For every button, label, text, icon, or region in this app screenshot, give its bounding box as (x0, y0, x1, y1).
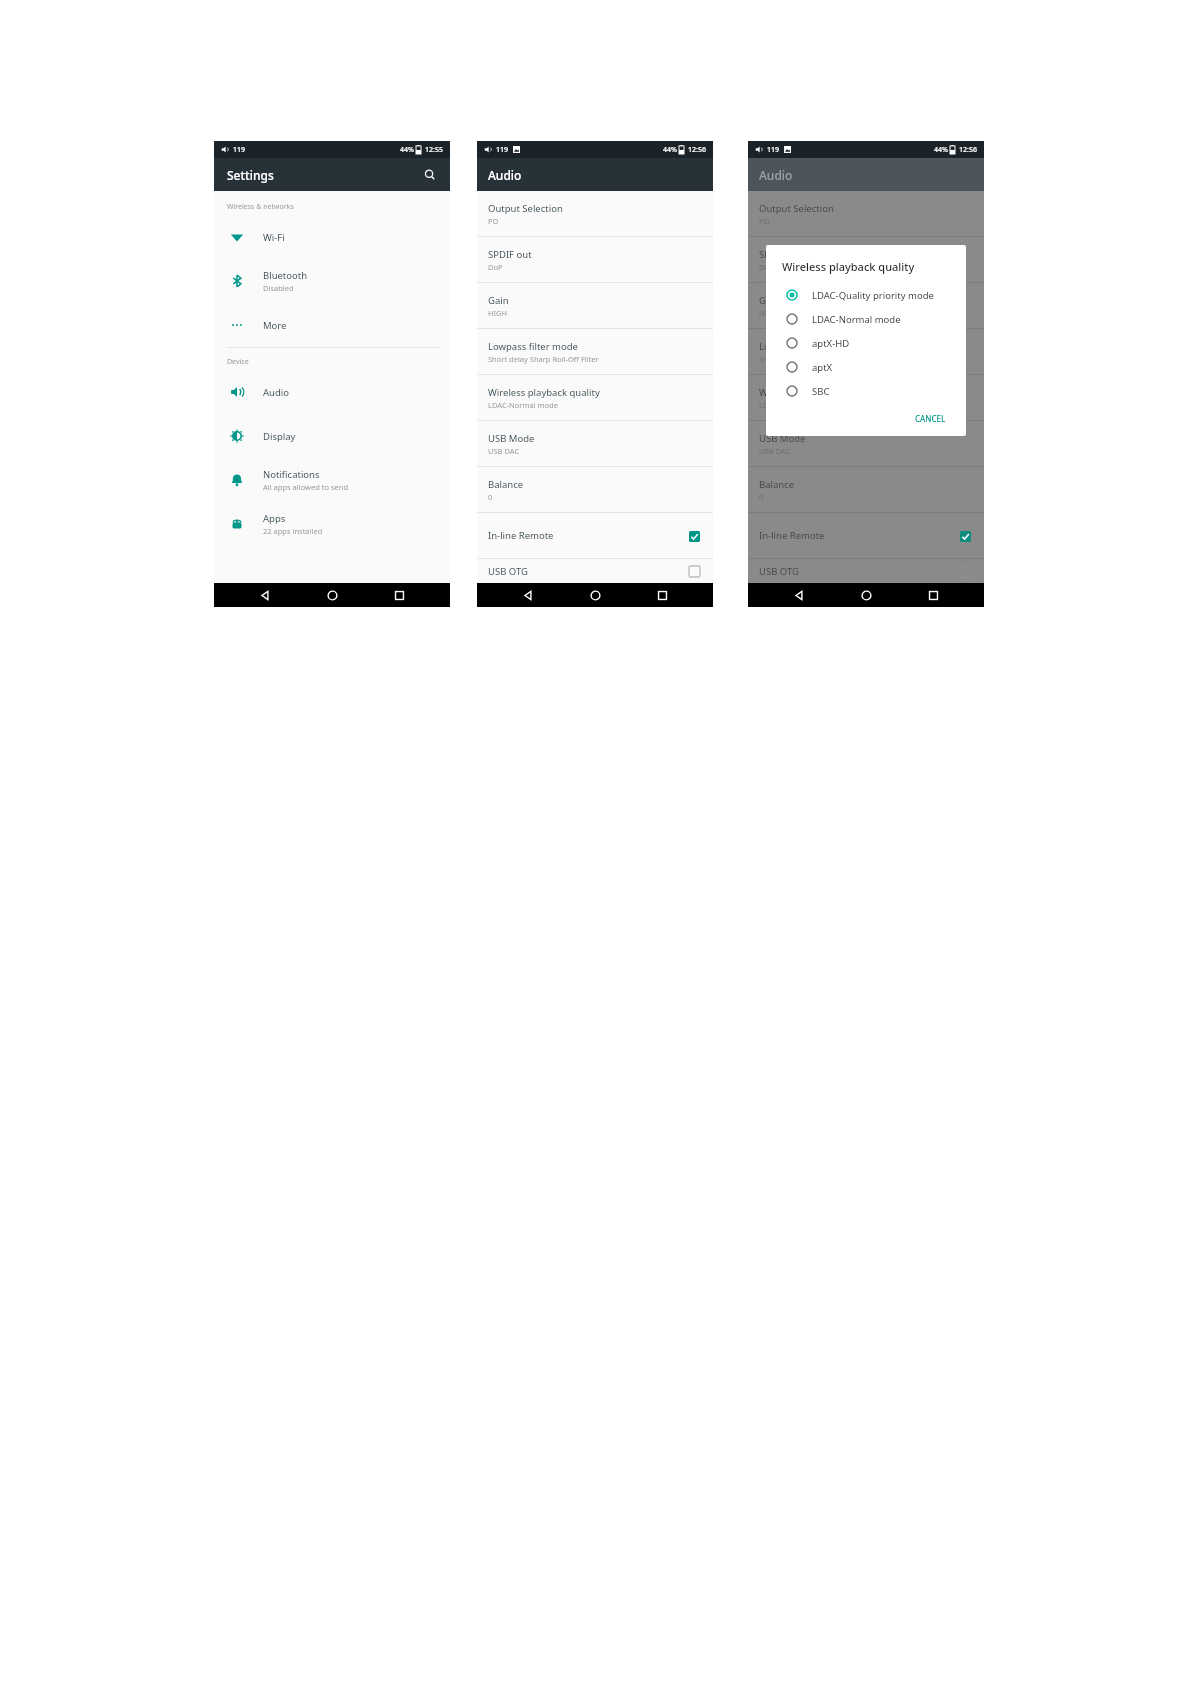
staticText: USB OTG (759, 565, 799, 578)
staticText: HIGH (488, 308, 508, 318)
button[interactable]: Notifications (214, 458, 450, 502)
button[interactable]: Home (316, 583, 348, 607)
staticText: 44% (934, 145, 948, 155)
staticText: Wireless & networks (227, 202, 294, 212)
staticText: All apps allowed to send (263, 482, 349, 492)
staticText: 119 (233, 145, 246, 155)
button[interactable]: USB Mode (477, 421, 713, 466)
staticText: Audio (488, 167, 522, 183)
button[interactable]: SPDIF out (477, 237, 713, 282)
button[interactable]: Back (512, 583, 544, 607)
button[interactable]: Back (249, 583, 281, 607)
staticText: Device (227, 357, 249, 367)
button[interactable]: aptX (782, 355, 952, 379)
staticText: LDAC-Normal mode (488, 400, 558, 410)
button[interactable]: Home (850, 583, 882, 607)
staticText: 44% (400, 145, 414, 155)
button[interactable]: Display (214, 414, 450, 458)
staticText: Balance (488, 478, 524, 491)
staticText: Output Selection (759, 202, 834, 215)
button[interactable]: Search (419, 164, 441, 186)
button[interactable]: Recents (646, 583, 678, 607)
button[interactable]: USB OTG (477, 559, 713, 583)
staticText: PO (759, 216, 770, 226)
button[interactable]: In-line Remote (477, 513, 713, 558)
button[interactable]: Wireless playback quality (477, 375, 713, 420)
staticText: Output Selection (488, 202, 563, 215)
button[interactable]: Output Selection (477, 191, 713, 236)
staticText: DoP (759, 262, 774, 272)
button[interactable]: LDAC-Normal mode (782, 307, 952, 331)
staticText: USB DAC (759, 446, 791, 456)
staticText: LDAC-Normal mode (759, 400, 829, 410)
button[interactable]: Lowpass filter mode (477, 329, 713, 374)
staticText: LDAC-Quality priority mode (812, 289, 934, 302)
button[interactable]: Recents (383, 583, 415, 607)
staticText: Audio (759, 167, 793, 183)
button[interactable]: Audio (214, 370, 450, 414)
staticText: HIGH (759, 308, 779, 318)
staticText: 12:56 (959, 145, 977, 155)
staticText: USB Mode (488, 432, 535, 445)
button[interactable]: SBC (782, 379, 952, 403)
staticText: Wi-Fi (263, 231, 285, 244)
staticText: 12:55 (425, 145, 443, 155)
staticText: CANCEL (915, 413, 946, 424)
button[interactable]: CANCEL (909, 409, 952, 428)
staticText: DoP (488, 262, 503, 272)
staticText: PO (488, 216, 499, 226)
staticText: USB OTG (488, 565, 528, 578)
button[interactable]: Bluetooth (214, 259, 450, 303)
staticText: Short delay Sharp Roll-Off Filter (759, 354, 870, 364)
staticText: Balance (759, 478, 795, 491)
staticText: Apps (263, 512, 286, 525)
button[interactable]: Output Selection (748, 191, 984, 236)
staticText: 119 (767, 145, 780, 155)
staticText: Short delay Sharp Roll-Off Filter (488, 354, 599, 364)
button[interactable]: Lowpass filter mode (748, 329, 984, 374)
button[interactable]: LDAC-Quality priority mode (782, 283, 952, 307)
staticText: In-line Remote (759, 529, 825, 542)
staticText: SBC (812, 385, 830, 398)
button[interactable]: Recents (917, 583, 949, 607)
staticText: Gain (759, 294, 780, 307)
staticText: Wireless playback quality (759, 386, 871, 399)
staticText: USB DAC (488, 446, 520, 456)
staticText: Settings (227, 167, 274, 183)
button[interactable]: Apps (214, 502, 450, 546)
button[interactable]: Gain (748, 283, 984, 328)
staticText: In-line Remote (488, 529, 554, 542)
staticText: aptX-HD (812, 337, 850, 350)
button[interactable]: aptX-HD (782, 331, 952, 355)
staticText: Wireless playback quality (488, 386, 600, 399)
staticText: Wireless playback quality (782, 259, 915, 274)
staticText: aptX (812, 361, 833, 374)
staticText: Display (263, 430, 296, 443)
staticText: Lowpass filter mode (488, 340, 578, 353)
staticText: Gain (488, 294, 509, 307)
button[interactable]: Wi-Fi (214, 215, 450, 259)
button[interactable]: More (214, 303, 450, 347)
staticText: More (263, 319, 287, 332)
button[interactable]: Balance (748, 467, 984, 512)
button[interactable]: Gain (477, 283, 713, 328)
staticText: LDAC-Normal mode (812, 313, 901, 326)
staticText: Lowpass filter mode (759, 340, 849, 353)
button[interactable]: Wireless playback quality (748, 375, 984, 420)
button[interactable]: Home (579, 583, 611, 607)
staticText: SPDIF out (759, 248, 803, 261)
button[interactable]: SPDIF out (748, 237, 984, 282)
staticText: Audio (263, 386, 289, 399)
staticText: Disabled (263, 283, 294, 293)
button[interactable]: USB OTG (748, 559, 984, 583)
staticText: 119 (496, 145, 509, 155)
button[interactable]: In-line Remote (748, 513, 984, 558)
staticText: 0 (759, 492, 764, 502)
button[interactable]: Back (783, 583, 815, 607)
staticText: 0 (488, 492, 493, 502)
staticText: 22 apps installed (263, 526, 323, 536)
staticText: 12:56 (688, 145, 706, 155)
staticText: SPDIF out (488, 248, 532, 261)
button[interactable]: USB Mode (748, 421, 984, 466)
button[interactable]: Balance (477, 467, 713, 512)
